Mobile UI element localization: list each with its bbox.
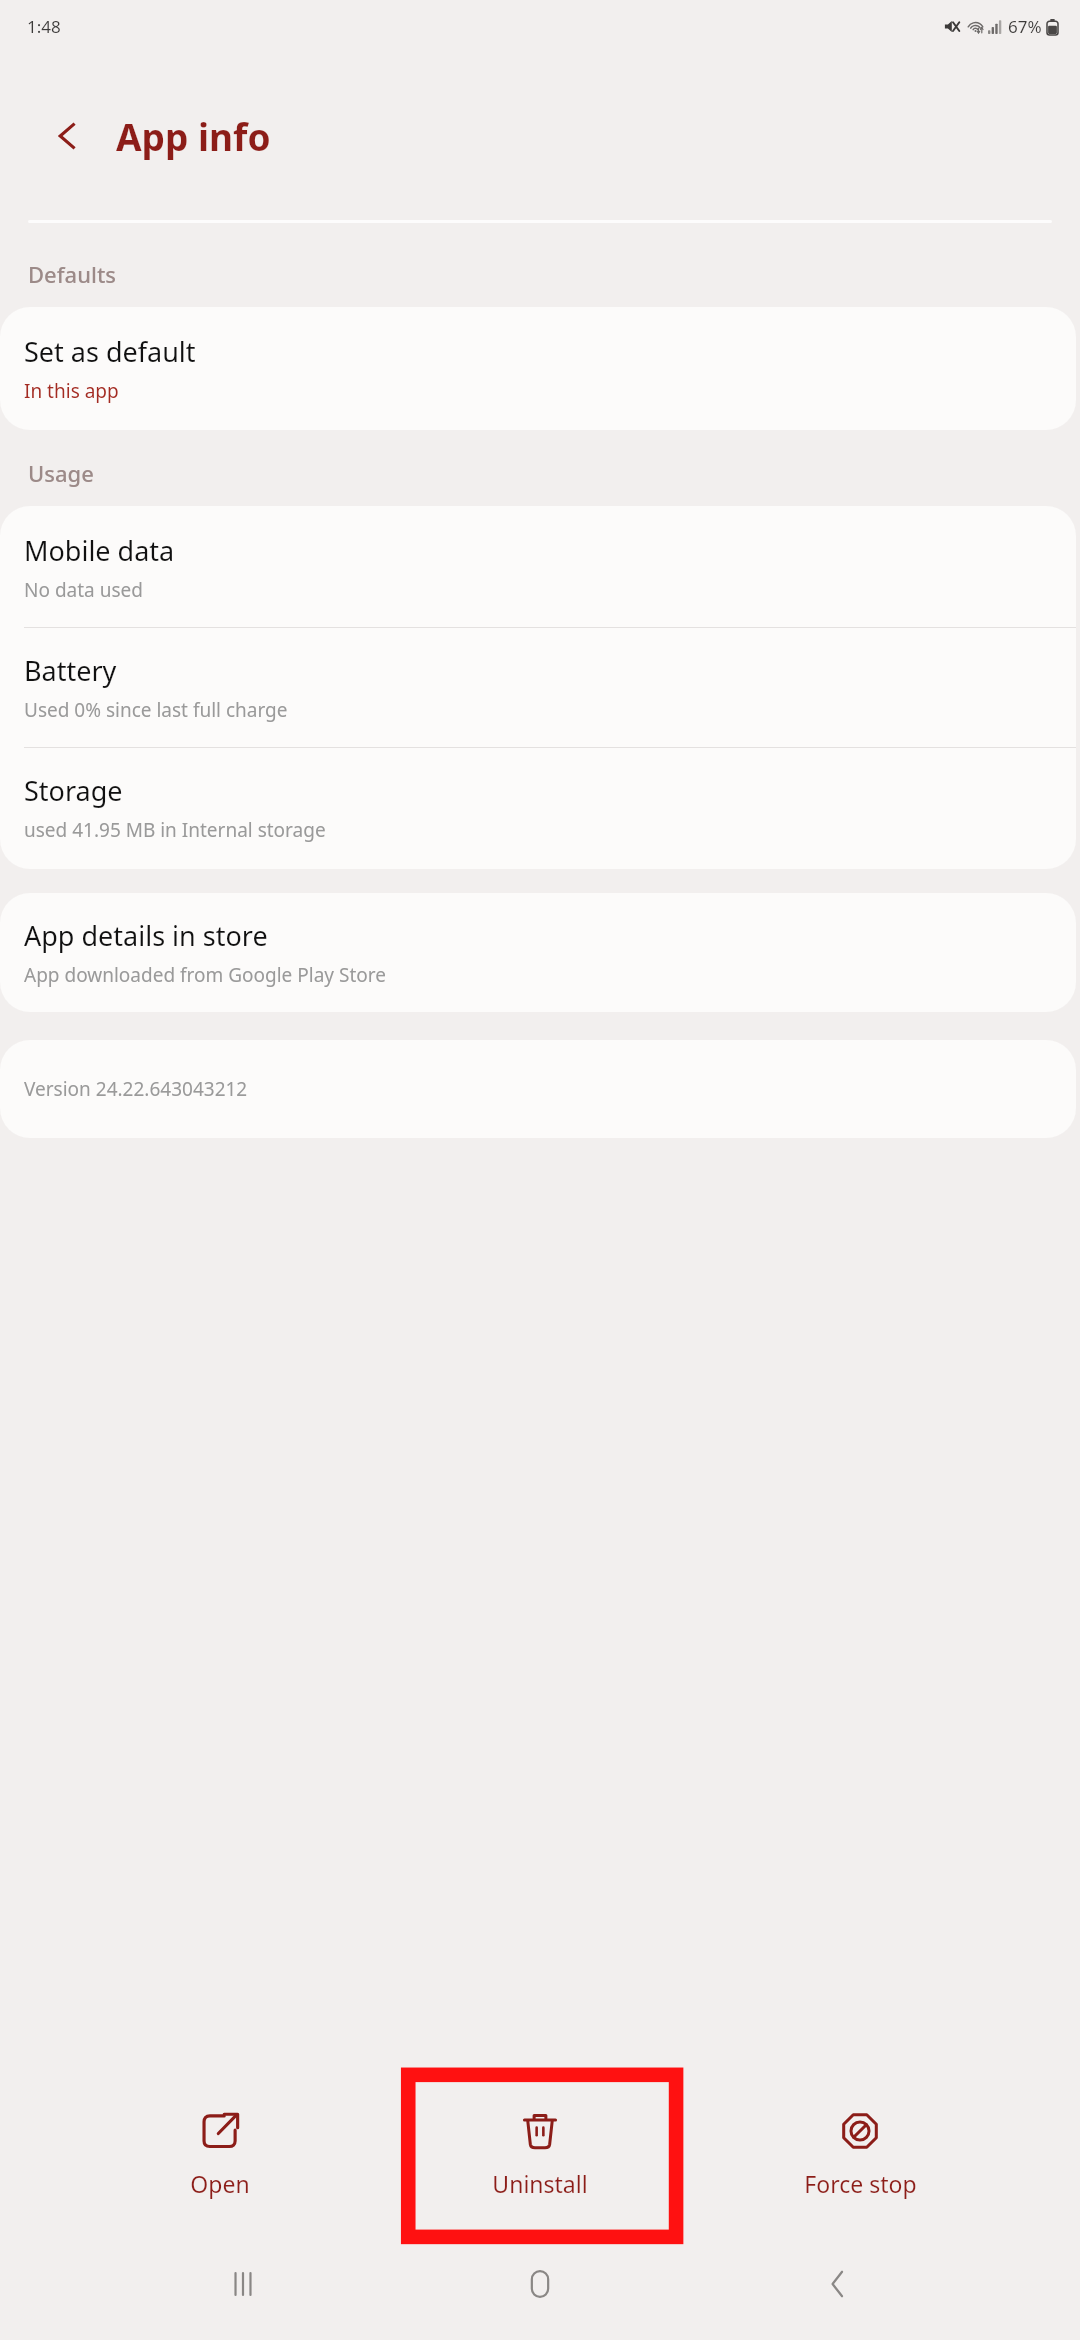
staticText: 67% [1008,15,1042,38]
button[interactable]: Home [485,2229,595,2339]
button[interactable]: Back [783,2229,893,2339]
button[interactable]: Storage [0,748,1076,869]
staticText: Defaults [28,259,117,289]
staticText: App downloaded from Google Play Store [24,962,386,988]
button[interactable]: Uninstall [440,2104,640,2205]
staticText: Set as default [24,333,196,370]
staticText: Storage [24,772,123,809]
staticText: Battery [24,652,117,689]
button[interactable]: Force stop [760,2104,960,2205]
staticText: App info [116,111,271,161]
staticText: Version 24.22.643043212 [24,1076,248,1102]
staticText: Usage [28,458,94,488]
button[interactable]: Battery [0,628,1076,747]
button[interactable]: App details in store [0,893,1076,1012]
staticText: Used 0% since last full charge [24,697,288,723]
button[interactable]: Mobile data [0,506,1076,627]
button[interactable]: Recent apps [188,2229,298,2339]
staticText: used 41.95 MB in Internal storage [24,817,326,843]
staticText: Uninstall [492,2168,588,2199]
button[interactable]: Back [36,104,100,168]
staticText: 1:48 [27,15,61,38]
button[interactable]: Set as default [0,307,1076,430]
staticText: In this app [24,378,119,404]
button[interactable]: Open [120,2104,320,2205]
staticText: Mobile data [24,532,175,569]
staticText: App details in store [24,917,268,954]
staticText: Force stop [804,2168,917,2199]
staticText: No data used [24,577,143,603]
button[interactable]: Version 24.22.643043212 [0,1040,1076,1138]
staticText: Open [190,2168,250,2199]
